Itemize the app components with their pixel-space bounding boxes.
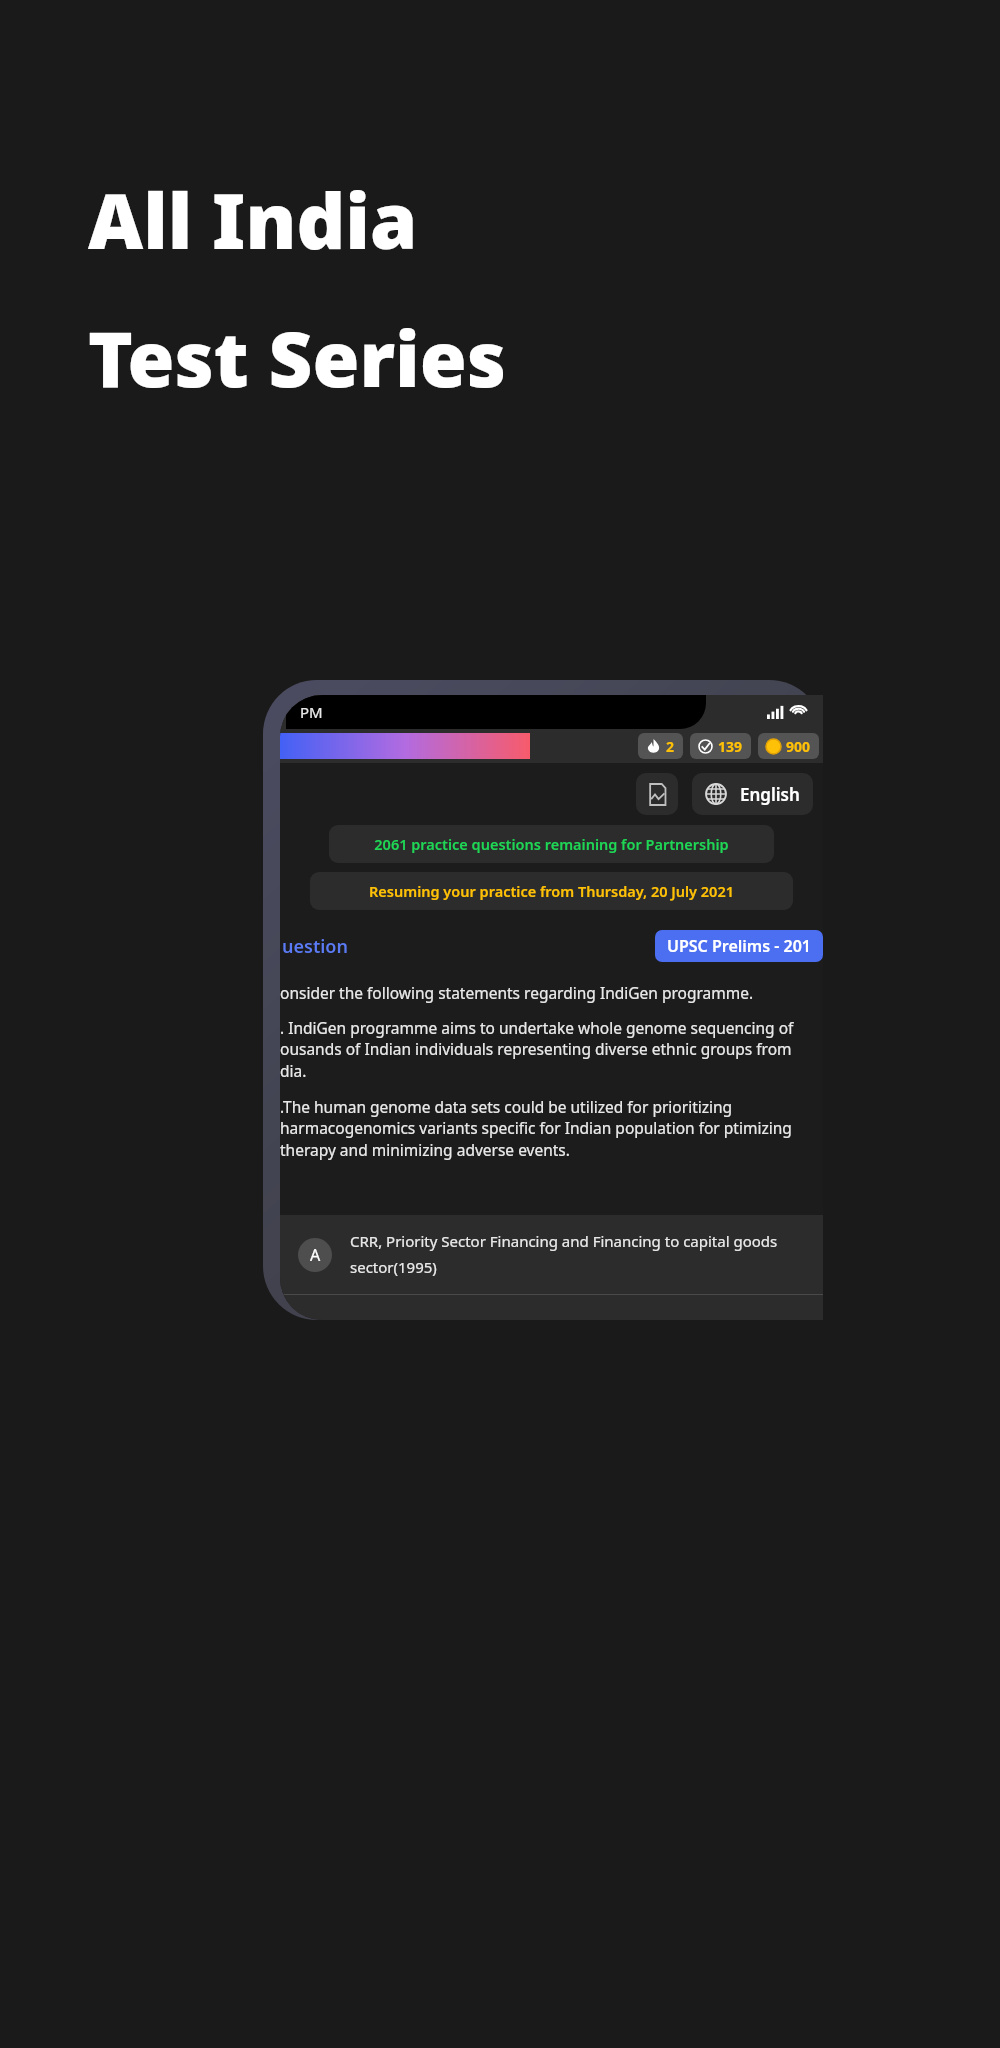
staticText: UPSC Prelims - 201 (667, 935, 811, 957)
button[interactable]: Solved (690, 733, 751, 759)
staticText: English (740, 783, 800, 806)
staticText: 900 (786, 737, 811, 756)
staticText: Resuming your practice from Thursday, 20… (369, 881, 734, 901)
staticText: onsider the following statements regardi… (280, 982, 813, 1003)
staticText: 2061 practice questions remaining for Pa… (374, 834, 729, 854)
staticText: All India (88, 168, 418, 272)
button[interactable]: Coins (758, 733, 819, 759)
button[interactable]: Streak (638, 733, 683, 759)
button[interactable]: 2061 practice questions remaining for Pa… (329, 825, 774, 863)
staticText: uestion (282, 934, 348, 959)
staticText: CRR, Priority Sector Financing and Finan… (350, 1231, 811, 1278)
other: Streak (646, 739, 661, 754)
staticText: 2 (666, 737, 675, 756)
other: Solved (698, 739, 713, 754)
staticText: .The human genome data sets could be uti… (280, 1096, 813, 1161)
button[interactable]: Resuming your practice from Thursday, 20… (310, 872, 793, 910)
staticText: Test Series (88, 306, 506, 410)
button[interactable]: UPSC Prelims - 201 (655, 930, 823, 962)
other: Coins (766, 739, 781, 754)
staticText: A (310, 1244, 321, 1266)
button[interactable]: A (280, 1295, 823, 1320)
staticText: . IndiGen programme aims to undertake wh… (280, 1017, 813, 1082)
button[interactable]: Image (636, 773, 678, 815)
button[interactable]: A (280, 1215, 823, 1294)
staticText: PM (300, 702, 323, 722)
staticText: 139 (718, 737, 743, 756)
button[interactable]: English (692, 773, 813, 815)
